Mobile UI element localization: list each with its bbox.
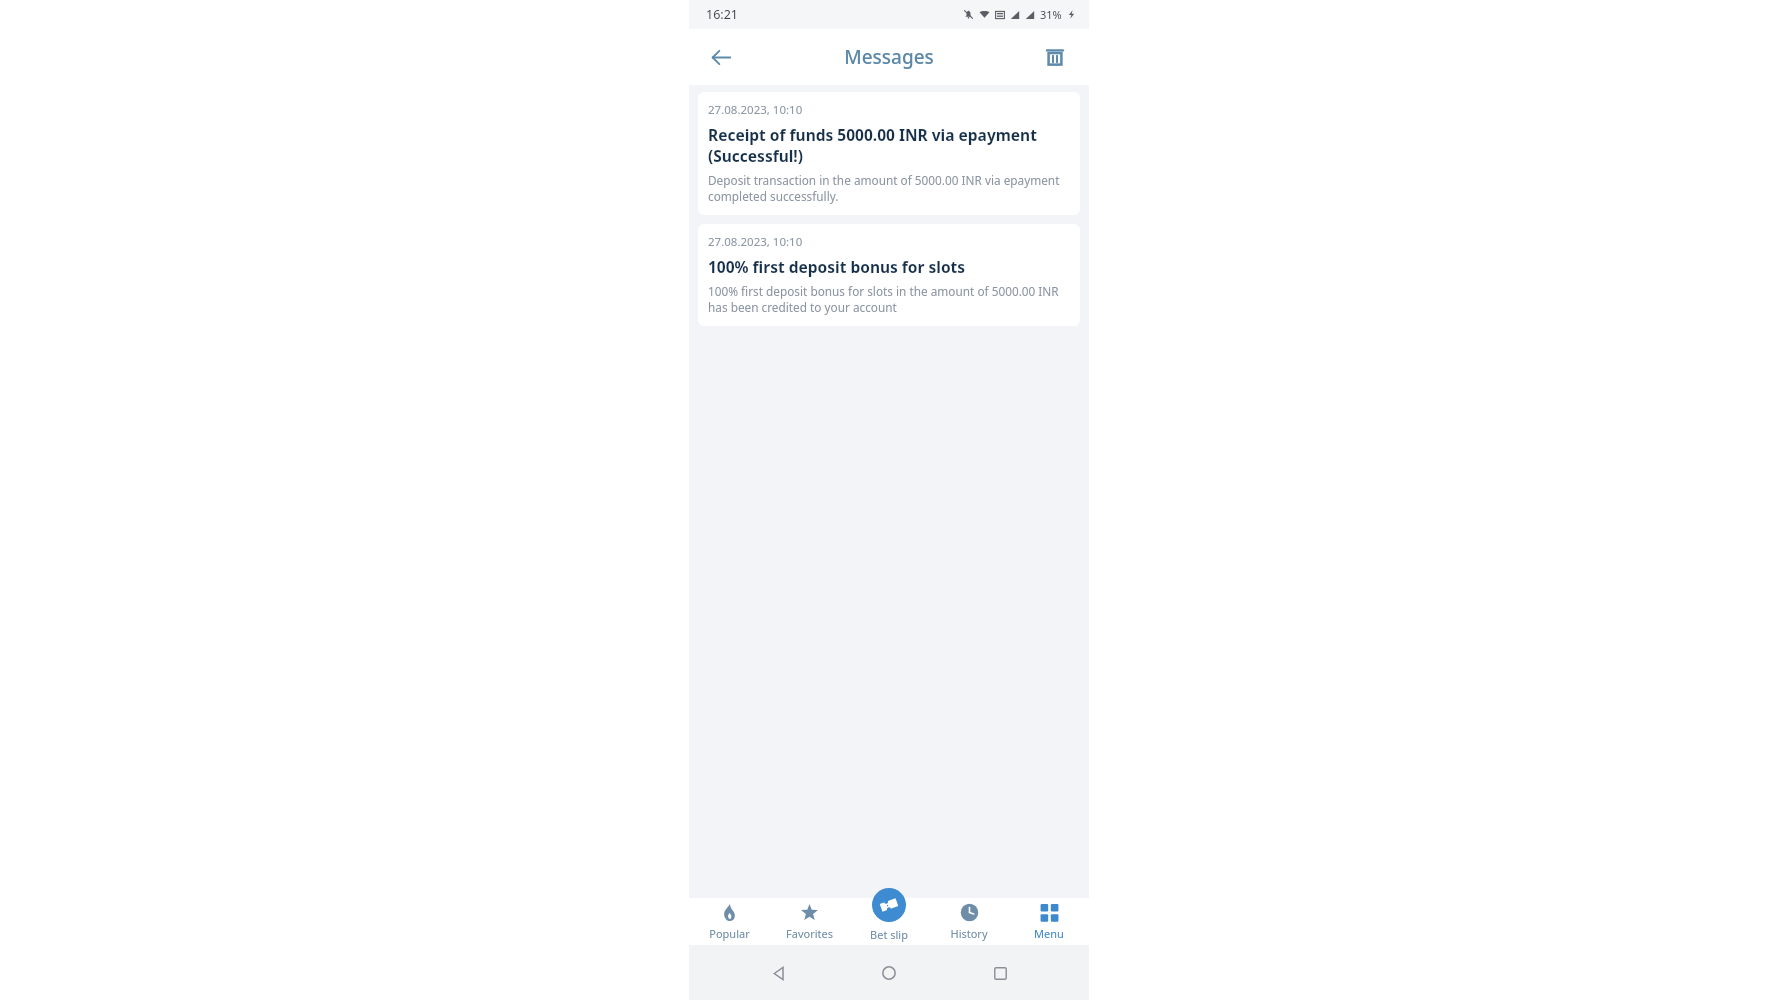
button[interactable]: Back [699,35,743,79]
staticText: Favorites [786,926,833,941]
staticText: Deposit transaction in the amount of 500… [708,172,1068,204]
button[interactable]: 27.08.2023, 10:10 [698,224,1080,326]
staticText: 16:21 [706,6,738,23]
staticText: Messages [844,44,934,70]
button[interactable]: Bet slip [849,887,929,942]
button[interactable]: Recent apps [978,951,1022,995]
staticText: Receipt of funds 5000.00 INR via epaymen… [708,124,1068,166]
staticText: 27.08.2023, 10:10 [708,102,803,118]
button[interactable]: Home [867,951,911,995]
button[interactable]: History [929,898,1009,945]
staticText: Bet slip [870,927,908,942]
button[interactable]: Menu [1009,898,1089,945]
staticText: 100% first deposit bonus for slots in th… [708,283,1068,315]
button[interactable]: Favorites [769,898,849,945]
button[interactable]: 27.08.2023, 10:10 [698,92,1080,215]
button[interactable]: Popular [689,898,769,945]
staticText: History [950,926,988,941]
staticText: 100% first deposit bonus for slots [708,256,966,277]
staticText: 27.08.2023, 10:10 [708,234,803,250]
staticText: 31% [1040,7,1062,22]
staticText: Menu [1034,926,1064,941]
button[interactable]: Delete all messages [1033,35,1077,79]
button[interactable]: Back [756,951,800,995]
staticText: Popular [709,926,750,941]
